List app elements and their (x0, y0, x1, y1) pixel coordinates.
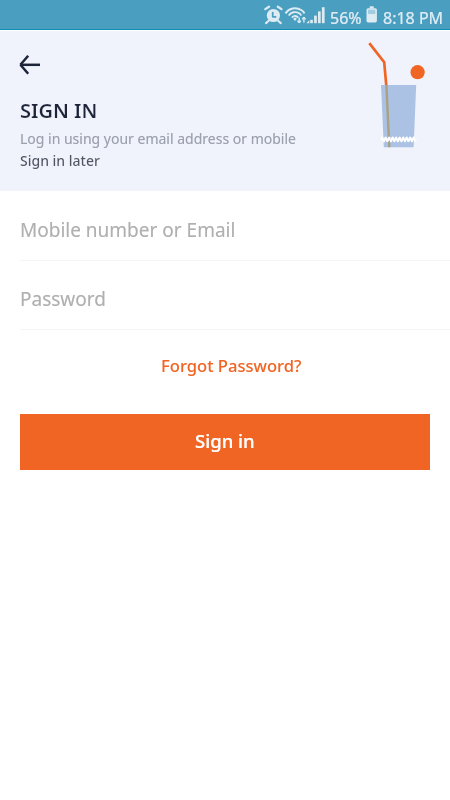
staticText: Password (20, 286, 106, 312)
staticText: SIGN IN (20, 97, 98, 124)
button[interactable]: Back (8, 43, 52, 87)
button[interactable]: Forgot Password? (153, 349, 310, 382)
button[interactable]: Sign in (20, 414, 430, 470)
button[interactable]: Sign in later (20, 151, 100, 170)
staticText: 56% (330, 7, 362, 29)
staticText: 8:18 PM (383, 7, 444, 29)
staticText: Log in using your email address or mobil… (20, 129, 296, 148)
staticText: Sign in (195, 428, 255, 453)
staticText: Mobile number or Email (20, 217, 236, 243)
